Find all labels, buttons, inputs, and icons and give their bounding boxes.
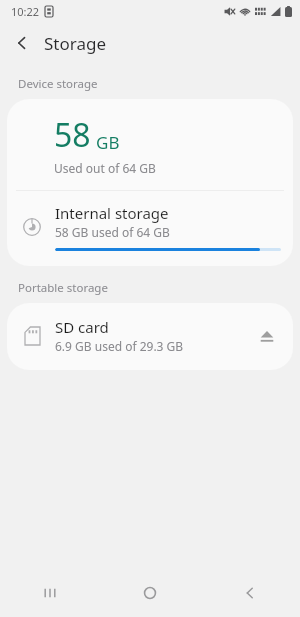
- staticText: 58 GB used of 64 GB: [55, 224, 170, 240]
- button[interactable]: Home: [100, 569, 200, 617]
- staticText: 10:22: [11, 4, 40, 19]
- button[interactable]: Back: [200, 569, 300, 617]
- staticText: 6.9 GB used of 29.3 GB: [55, 338, 184, 354]
- button[interactable]: Recent apps: [0, 569, 100, 617]
- staticText: Portable storage: [18, 280, 108, 296]
- staticText: Used out of 64 GB: [54, 160, 156, 176]
- staticText: 58: [54, 113, 91, 157]
- staticText: Internal storage: [55, 203, 169, 223]
- button[interactable]: SD card: [7, 303, 293, 370]
- button[interactable]: Internal storage: [7, 191, 293, 264]
- staticText: GB: [96, 131, 120, 154]
- button[interactable]: 58: [7, 99, 293, 190]
- staticText: Device storage: [18, 76, 98, 92]
- staticText: Storage: [44, 32, 107, 55]
- button[interactable]: Back: [4, 25, 40, 61]
- staticText: SD card: [55, 317, 109, 337]
- button[interactable]: Eject SD card: [251, 320, 283, 352]
